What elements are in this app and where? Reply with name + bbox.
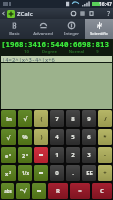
staticText: % (22, 133, 28, 141)
staticText: R (56, 187, 60, 195)
staticText: Basic (9, 31, 20, 37)
staticText: x (26, 152, 29, 157)
button[interactable]: Advanced (29, 19, 57, 39)
staticText: Normal (63, 49, 90, 55)
staticText: 10 (17, 49, 36, 55)
button[interactable] (34, 165, 48, 181)
button[interactable]: 0 (50, 165, 64, 181)
button[interactable]: 4 (50, 129, 64, 145)
staticText: . (72, 169, 74, 177)
button[interactable]: Help (96, 8, 105, 19)
staticText: |4=2^|x^3-4^|x+6 (2, 56, 55, 62)
button[interactable] (32, 183, 46, 199)
button[interactable]: + (98, 165, 112, 181)
staticText: √ (23, 115, 28, 122)
staticText: 8 (71, 115, 75, 123)
staticText: 7 (55, 115, 59, 123)
button[interactable]: C (92, 183, 112, 199)
button[interactable]: e (1, 147, 16, 163)
staticText: 6 (87, 133, 91, 141)
staticText: ( (40, 115, 43, 123)
button[interactable]: . (66, 165, 80, 181)
staticText: ln (6, 115, 12, 123)
staticText: e (5, 152, 9, 159)
button[interactable]: abs (1, 183, 14, 199)
staticText: 9 (90, 49, 105, 55)
button[interactable] (34, 147, 48, 163)
button[interactable]: ln (1, 110, 16, 127)
staticText: x (9, 152, 12, 157)
button[interactable]: 1 (50, 147, 64, 163)
button[interactable]: |4=2^|x^3-4^|x+6 (1, 56, 112, 62)
button[interactable]: 8 (66, 110, 80, 127)
staticText: ZCalc (17, 10, 33, 18)
button[interactable]: EE (82, 165, 96, 181)
button[interactable]: 2 (66, 147, 80, 163)
staticText: 2 (71, 151, 75, 159)
staticText: Advanced (33, 31, 53, 37)
staticText: + (103, 169, 107, 177)
staticText: abs (4, 188, 12, 194)
button[interactable]: Scientific (85, 19, 113, 39)
button[interactable]: Back (0, 8, 7, 19)
button[interactable]: 9 (82, 110, 96, 127)
button[interactable]: Help (105, 8, 113, 19)
button[interactable]: 7 (50, 110, 64, 127)
staticText: 9 (87, 115, 91, 123)
staticText: ) (40, 133, 43, 141)
staticText: 2 (9, 170, 12, 175)
staticText: 4 (55, 133, 59, 141)
button[interactable]: / (98, 110, 112, 127)
staticText: ⁿ√ (20, 187, 27, 195)
button[interactable]: ( (34, 110, 48, 127)
staticText: 3 (87, 151, 91, 159)
button[interactable]: √ (18, 110, 32, 127)
button[interactable]: x (1, 165, 16, 181)
staticText: [1968:3416:5440:6698:8136:43 (1, 39, 113, 48)
button[interactable]: 1/x (18, 165, 32, 181)
staticText: * (103, 133, 107, 141)
button[interactable]: 2 (18, 147, 32, 163)
button[interactable]: % (18, 129, 32, 145)
staticText: Integer (64, 31, 79, 37)
button[interactable]: Refresh (69, 8, 78, 19)
staticText: x (5, 170, 9, 177)
staticText: Scientific (90, 31, 108, 37)
button[interactable]: ⁿ√ (16, 183, 30, 199)
button[interactable]: - (98, 147, 112, 163)
button[interactable]: 6 (82, 129, 96, 145)
staticText: / (104, 115, 107, 123)
staticText: - (104, 151, 106, 159)
staticText: 1/x (22, 170, 29, 176)
button[interactable]: 5 (66, 129, 80, 145)
button[interactable]: Integer (57, 19, 85, 39)
staticText: 1 (55, 151, 59, 159)
button[interactable]: R (48, 183, 68, 199)
button[interactable]: * (98, 129, 112, 145)
staticText: EE (86, 169, 93, 177)
button[interactable]: = (70, 183, 90, 199)
staticText: 2 (22, 152, 26, 159)
button[interactable]: Basic (0, 19, 29, 39)
staticText: Degree (36, 49, 63, 55)
button[interactable]: 3 (82, 147, 96, 163)
button[interactable]: ) (34, 129, 48, 145)
staticText: ? (107, 9, 111, 19)
staticText: 5 (71, 133, 75, 141)
button[interactable]: Menu (78, 8, 87, 19)
staticText: 16:47 (99, 1, 112, 8)
staticText: √ (6, 134, 11, 141)
staticText: C (100, 187, 104, 195)
staticText: 0 (55, 169, 59, 177)
staticText: = (78, 187, 82, 195)
button[interactable]: √ (1, 129, 16, 145)
button[interactable]: History (87, 8, 96, 19)
